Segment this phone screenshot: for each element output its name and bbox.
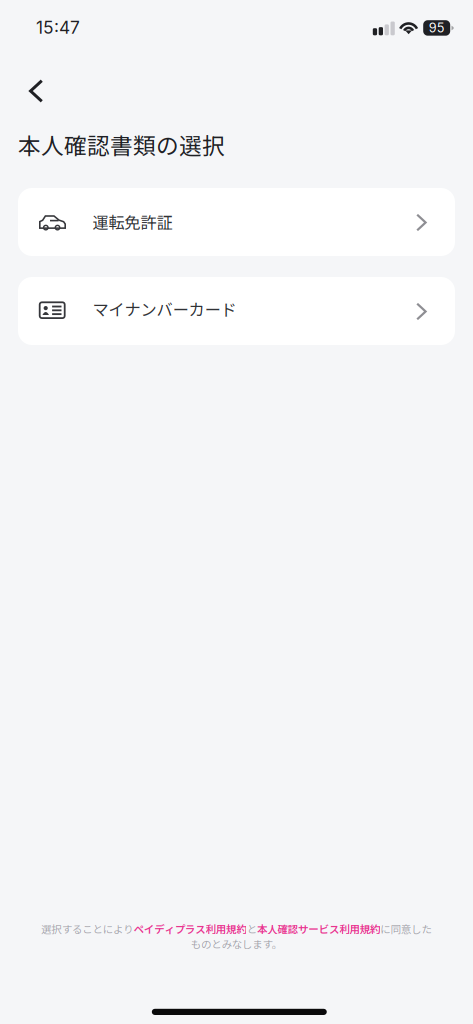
staticText: 運転免許証 (92, 210, 172, 233)
button[interactable]: 運転免許証 (18, 188, 455, 256)
button[interactable]: Back (14, 69, 58, 113)
staticText: 95 (429, 20, 445, 36)
staticText: マイナンバーカード (92, 297, 236, 320)
button[interactable]: マイナンバーカード (18, 277, 455, 345)
staticText: 15:47 (36, 17, 80, 38)
staticText: 本人確認書類の選択 (18, 128, 225, 161)
staticText: 選択することによりペイディプラス利用規約と本人確認サービス利用規約に同意した も… (41, 921, 431, 951)
